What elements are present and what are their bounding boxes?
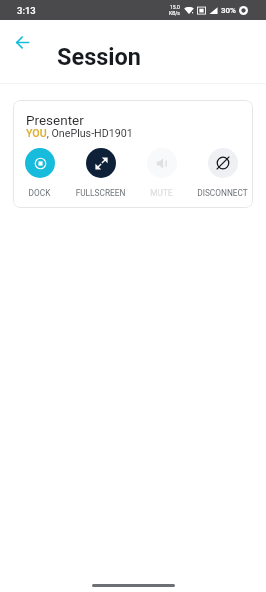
staticText: 3:13 [17,5,36,16]
button[interactable]: Back [8,28,36,56]
staticText: DOCK [13,188,66,198]
button[interactable]: MUTE [135,148,188,198]
button[interactable]: FULLSCREEN [74,148,127,198]
staticText: FULLSCREEN [74,188,127,198]
button[interactable]: DISCONNECT [196,148,249,198]
button[interactable]: DOCK [13,148,66,198]
staticText: DISCONNECT [196,188,249,198]
staticText: KB/s [169,10,180,16]
staticText: Session [57,43,142,71]
staticText: YOU, OnePlus-HD1901 [26,127,133,140]
staticText: 15.0 [170,4,180,10]
staticText: MUTE [135,188,188,198]
staticText: 30% [221,6,236,15]
staticText: Presenter [26,112,84,128]
